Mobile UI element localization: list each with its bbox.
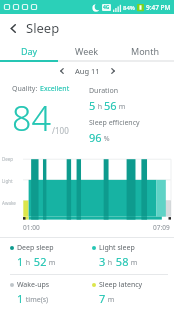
staticText: h bbox=[24, 258, 31, 268]
staticText: Light bbox=[2, 178, 13, 184]
staticText: Sleep efficiency bbox=[89, 118, 140, 128]
staticText: m bbox=[47, 258, 56, 268]
staticText: Sleep latency bbox=[99, 280, 143, 290]
button[interactable]: Previous day bbox=[54, 63, 70, 79]
staticText: Wake-ups bbox=[17, 280, 50, 290]
button[interactable]: Day bbox=[0, 41, 58, 60]
staticText: 52 bbox=[31, 254, 47, 269]
staticText: Day bbox=[21, 45, 38, 57]
staticText: Month bbox=[131, 45, 159, 57]
staticText: h bbox=[96, 102, 104, 112]
button[interactable]: Back bbox=[0, 15, 26, 41]
staticText: 07:09 bbox=[153, 223, 170, 232]
staticText: m bbox=[117, 102, 126, 112]
staticText: Deep bbox=[2, 156, 14, 162]
staticText: 1 bbox=[17, 254, 24, 269]
staticText: /100 bbox=[52, 125, 69, 136]
button[interactable]: Month bbox=[116, 41, 174, 60]
button[interactable]: Sleep latency bbox=[92, 280, 174, 306]
staticText: 5 bbox=[89, 98, 96, 113]
button[interactable]: Week bbox=[58, 41, 116, 60]
staticText: 1 bbox=[17, 291, 24, 306]
button[interactable]: Light sleep bbox=[92, 243, 174, 269]
staticText: Excellent bbox=[40, 84, 70, 94]
staticText: 84% bbox=[123, 4, 135, 12]
staticText: 4G bbox=[103, 4, 110, 11]
button[interactable]: Wake-ups bbox=[10, 280, 92, 306]
staticText: 56 bbox=[104, 98, 117, 113]
staticText: Sleep bbox=[26, 19, 60, 37]
staticText: Week bbox=[75, 45, 99, 57]
staticText: Awake bbox=[2, 200, 16, 206]
staticText: % bbox=[102, 134, 110, 144]
staticText: m bbox=[106, 295, 115, 305]
staticText: h bbox=[106, 258, 113, 268]
staticText: 7 bbox=[99, 291, 106, 306]
staticText: 84 bbox=[12, 95, 51, 141]
staticText: m bbox=[129, 258, 138, 268]
staticText: Light sleep bbox=[99, 243, 135, 253]
staticText: 96 bbox=[89, 130, 102, 145]
button[interactable]: Next day bbox=[105, 63, 121, 79]
staticText: 9:47 PM bbox=[146, 3, 171, 12]
staticText: Aug 11 bbox=[75, 66, 100, 76]
staticText: Deep sleep bbox=[17, 243, 54, 253]
staticText: 01:00 bbox=[23, 223, 40, 232]
staticText: Duration bbox=[89, 86, 119, 96]
staticText: 3 bbox=[99, 254, 106, 269]
staticText: 58 bbox=[113, 254, 129, 269]
staticText: time(s) bbox=[24, 295, 49, 305]
staticText: Quality: bbox=[12, 84, 40, 94]
button[interactable]: Deep sleep bbox=[10, 243, 92, 269]
